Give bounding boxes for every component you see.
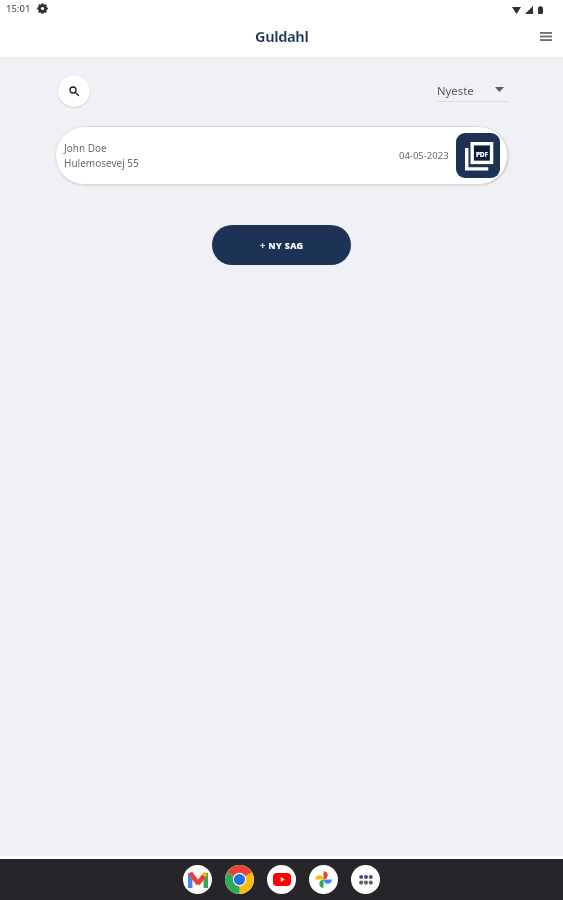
staticText: John Doe: [64, 141, 107, 155]
staticText: 04-05-2023: [399, 149, 449, 162]
staticText: PDF: [476, 150, 488, 159]
button[interactable]: Menu: [532, 22, 560, 50]
staticText: Nyeste: [437, 83, 474, 98]
button[interactable]: Photos: [309, 865, 338, 894]
staticText: Hulemosevej 55: [64, 156, 139, 170]
button[interactable]: Open PDF: [456, 133, 500, 178]
button[interactable]: + NY SAG: [212, 225, 351, 265]
button[interactable]: YouTube: [267, 865, 296, 894]
button[interactable]: Search: [58, 75, 90, 107]
button[interactable]: Nyeste: [437, 78, 508, 102]
staticText: + NY SAG: [260, 239, 304, 251]
button[interactable]: All apps: [351, 865, 380, 894]
button[interactable]: Chrome: [225, 865, 254, 894]
staticText: Guldahl: [255, 26, 309, 46]
button[interactable]: Gmail: [183, 865, 212, 894]
staticText: 15:01: [6, 2, 31, 15]
button[interactable]: John Doe: [55, 126, 508, 185]
